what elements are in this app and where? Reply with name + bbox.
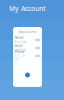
button[interactable]: Email: [13, 44, 42, 52]
staticText: Alex Park: [15, 40, 26, 44]
staticText: Email: [15, 44, 23, 47]
button[interactable]: Phone: [13, 52, 42, 60]
button[interactable]: Name: [13, 36, 42, 44]
staticText: Account Info: [18, 30, 36, 34]
staticText: Name: [15, 36, 24, 39]
staticText: alex@mail: [15, 48, 26, 52]
button[interactable]: Add: [25, 72, 30, 77]
staticText: My Account: [9, 4, 46, 13]
staticText: Phone: [15, 50, 25, 54]
staticText: 555-0199: [15, 55, 26, 62]
